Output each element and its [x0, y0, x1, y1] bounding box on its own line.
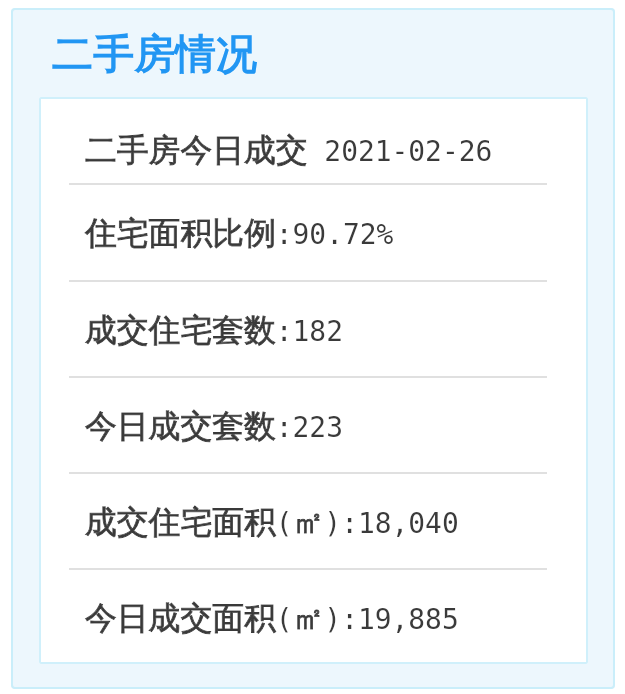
staticText: 住宅面积比例:90.72%: [85, 213, 394, 253]
button[interactable]: 住宅面积比例:90.72%: [41, 185, 586, 280]
staticText: 住宅面积比例:90.72%: [85, 213, 394, 253]
staticText: 今日成交套数:223: [85, 406, 343, 446]
staticText: 成交住宅套数:182: [85, 310, 343, 350]
staticText: 二手房情况: [52, 29, 257, 81]
staticText: 二手房今日成交 2021-02-26: [85, 130, 493, 170]
staticText: 二手房今日成交 2021-02-26: [85, 130, 493, 170]
staticText: 成交住宅面积(㎡):18,040: [85, 502, 459, 542]
button[interactable]: 成交住宅面积(㎡):18,040: [41, 474, 586, 568]
staticText: 成交住宅面积(㎡):18,040: [85, 502, 459, 542]
button[interactable]: 成交住宅套数:182: [41, 282, 586, 376]
staticText: 今日成交面积(㎡):19,885: [85, 598, 459, 638]
staticText: 今日成交套数:223: [85, 406, 343, 446]
button[interactable]: 今日成交套数:223: [41, 378, 586, 472]
staticText: 今日成交面积(㎡):19,885: [85, 598, 459, 638]
staticText: 成交住宅套数:182: [85, 310, 343, 350]
button[interactable]: 今日成交面积(㎡):19,885: [41, 570, 586, 662]
button[interactable]: 二手房今日成交 2021-02-26: [41, 99, 586, 183]
